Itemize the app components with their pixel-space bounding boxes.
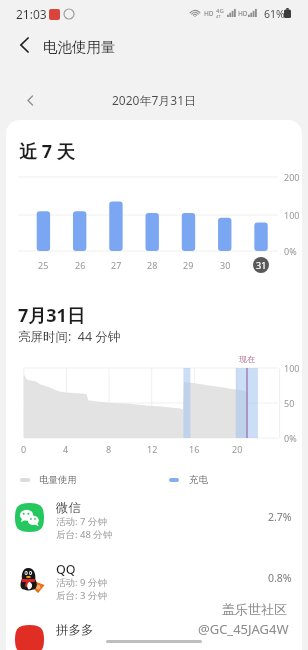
staticText: 2020年7月31日 <box>112 92 197 108</box>
staticText: 4T <box>216 14 221 19</box>
staticText: 12 <box>147 443 158 455</box>
staticText: 活动: 7 分钟 <box>56 515 107 528</box>
staticText: 7月31日 <box>18 303 85 328</box>
staticText: @GC_45JAG4W <box>198 620 289 638</box>
staticText: 31 <box>256 259 267 271</box>
staticText: 活动: 9 分钟 <box>56 576 107 589</box>
staticText: 30 <box>220 259 231 271</box>
staticText: 4 <box>63 443 69 455</box>
staticText: 25 <box>38 259 49 271</box>
staticText: 电量使用 <box>39 474 77 486</box>
staticText: 20 <box>232 443 243 455</box>
staticText: 0.8% <box>268 571 292 585</box>
staticText: 16 <box>189 443 200 455</box>
staticText: 亮屏时间: 44 分钟 <box>18 328 121 345</box>
button[interactable]: Previous day <box>18 88 42 112</box>
staticText: HD <box>204 9 214 18</box>
button[interactable]: Back <box>2 23 46 67</box>
staticText: 4G <box>216 7 224 15</box>
button[interactable]: 拼多多 <box>6 620 302 650</box>
staticText: 61% <box>264 7 285 21</box>
staticText: 28 <box>147 259 158 271</box>
button[interactable]: 微信 <box>6 498 302 559</box>
staticText: 拼多多 <box>56 622 94 638</box>
staticText: 29 <box>183 259 194 271</box>
button[interactable]: QQ <box>6 559 302 620</box>
staticText: 200 <box>284 171 300 183</box>
staticText: HD <box>238 9 248 18</box>
staticText: 近 7 天 <box>19 139 75 164</box>
staticText: 电池使用量 <box>43 38 116 56</box>
staticText: 100 <box>284 362 300 374</box>
staticText: 充电 <box>189 474 208 486</box>
staticText: 27 <box>111 259 122 271</box>
staticText: 现在 <box>239 354 255 364</box>
staticText: QQ <box>56 561 76 578</box>
staticText: 2.7% <box>268 510 292 524</box>
staticText: 盖乐世社区 <box>222 601 287 617</box>
staticText: 后台: 48 分钟 <box>56 528 113 541</box>
staticText: 21:03 <box>16 6 47 22</box>
staticText: 50 <box>284 397 295 409</box>
staticText: 0% <box>284 245 297 257</box>
staticText: 0 <box>21 443 27 455</box>
staticText: 26 <box>75 259 86 271</box>
staticText: 微信 <box>56 500 81 516</box>
staticText: 后台: 3 分钟 <box>56 589 107 602</box>
staticText: 8 <box>106 443 112 455</box>
staticText: 0% <box>284 432 297 444</box>
staticText: 100 <box>284 209 300 221</box>
